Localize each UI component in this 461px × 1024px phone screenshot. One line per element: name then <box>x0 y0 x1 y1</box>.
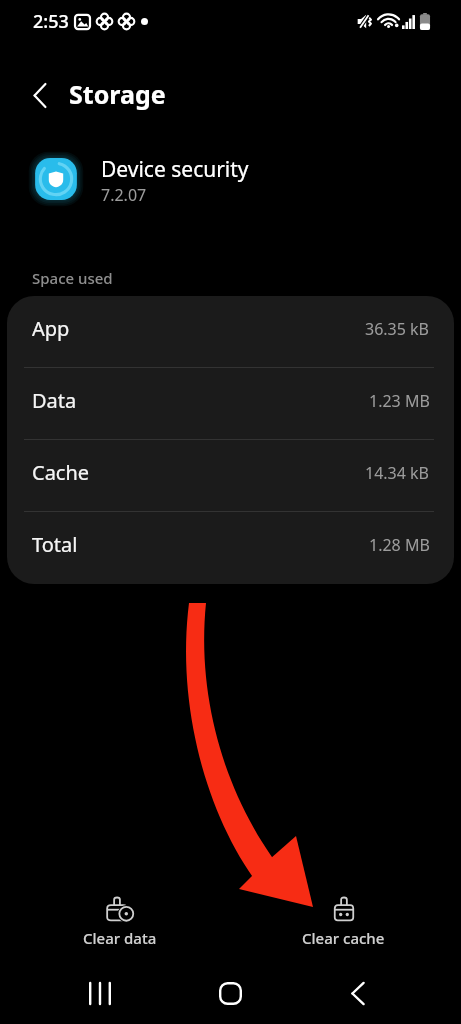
button[interactable]: Cache <box>7 440 454 512</box>
button[interactable]: Back <box>320 965 396 1021</box>
staticText: 1.28 MB <box>369 534 430 556</box>
staticText: 1.23 MB <box>369 390 430 412</box>
button[interactable]: Total <box>7 512 454 584</box>
button[interactable]: Recent apps <box>62 965 138 1021</box>
staticText: 7.2.07 <box>101 184 147 206</box>
staticText: 14.34 kB <box>365 462 430 484</box>
button[interactable]: App <box>7 296 454 368</box>
staticText: Storage <box>69 77 166 111</box>
staticText: 2:53 <box>33 9 69 34</box>
button[interactable]: Data <box>7 368 454 440</box>
staticText: Data <box>32 387 77 414</box>
button[interactable]: Clear cache <box>272 884 415 960</box>
staticText: 36.35 kB <box>365 318 430 340</box>
button[interactable]: Clear data <box>48 884 191 960</box>
staticText: Space used <box>32 268 113 288</box>
staticText: Device security <box>101 155 249 184</box>
staticText: Total <box>32 531 78 558</box>
button[interactable]: Home <box>192 965 268 1021</box>
staticText: Cache <box>32 459 90 486</box>
staticText: Clear data <box>83 928 157 948</box>
staticText: Clear cache <box>302 928 385 948</box>
button[interactable]: Back <box>22 77 58 113</box>
staticText: App <box>32 315 70 342</box>
